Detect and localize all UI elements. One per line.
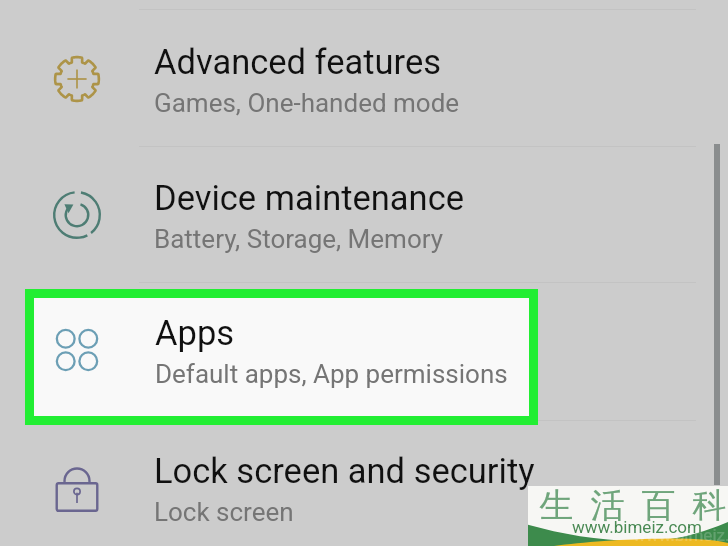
staticText: Battery, Storage, Memory <box>154 224 444 254</box>
staticText: Advanced features <box>154 42 442 82</box>
staticText: Lock screen <box>154 497 294 527</box>
staticText: www.bimeiz.com <box>572 517 702 537</box>
staticText: Apps <box>155 313 235 353</box>
button[interactable]: Device maintenance <box>0 148 728 283</box>
staticText: Games, One-handed mode <box>154 88 460 118</box>
staticText: Device maintenance <box>154 178 464 218</box>
button[interactable]: Lock screen and security <box>0 421 728 546</box>
staticText: Lock screen and security <box>154 451 535 491</box>
button[interactable]: Apps <box>34 298 529 416</box>
staticText: Default apps, App permissions <box>155 359 508 389</box>
staticText: www.bimeiz.com <box>633 525 728 545</box>
other: Device maintenance <box>53 191 101 239</box>
other: Lock screen and security <box>53 464 101 512</box>
staticText: 生活百科 <box>531 484 728 527</box>
other: Advanced features <box>53 55 101 103</box>
button[interactable]: Advanced features <box>0 12 728 147</box>
other: Apps <box>53 326 101 374</box>
